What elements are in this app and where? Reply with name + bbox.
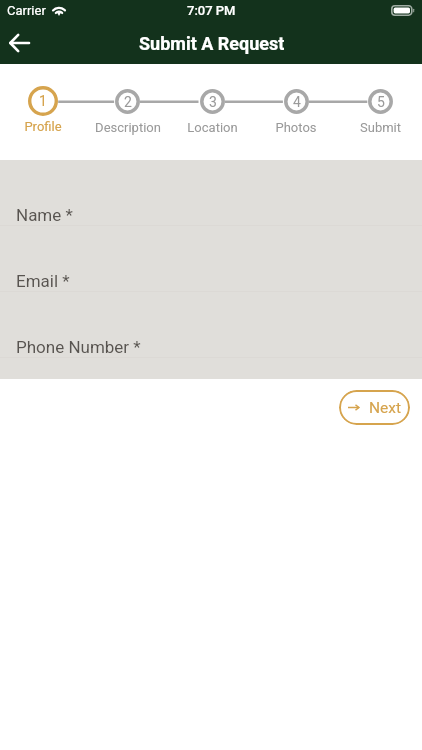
staticText: Location — [187, 120, 238, 135]
staticText: 5 — [377, 94, 385, 110]
button[interactable]: Name * — [0, 180, 422, 246]
button[interactable]: Email * — [0, 246, 422, 312]
staticText: Submit A Request — [139, 33, 285, 54]
button[interactable]: 5 — [338, 64, 422, 135]
button[interactable]: 3 — [170, 64, 254, 135]
button[interactable]: 4 — [254, 64, 338, 135]
button[interactable]: 2 — [85, 64, 170, 135]
staticText: Name * — [16, 205, 73, 225]
staticText: 7:07 PM — [187, 3, 236, 18]
staticText: Profile — [24, 119, 62, 134]
staticText: Description — [95, 120, 161, 135]
staticText: 3 — [209, 94, 217, 110]
button[interactable]: Back — [0, 24, 38, 62]
staticText: Carrier — [7, 3, 46, 18]
staticText: Photos — [275, 120, 317, 135]
staticText: 4 — [293, 94, 301, 110]
staticText: 1 — [39, 93, 47, 109]
button[interactable]: Next — [339, 390, 410, 425]
staticText: Submit — [360, 120, 401, 135]
staticText: Email * — [16, 271, 70, 291]
staticText: Phone Number * — [16, 337, 141, 357]
button[interactable]: 1 — [0, 64, 85, 134]
staticText: Next — [369, 399, 402, 417]
button[interactable]: Phone Number * — [0, 312, 422, 378]
staticText: 2 — [124, 94, 132, 110]
